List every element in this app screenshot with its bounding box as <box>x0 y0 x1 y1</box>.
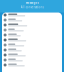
button[interactable] <box>2 12 62 17</box>
button[interactable] <box>2 62 62 67</box>
button[interactable] <box>2 52 62 57</box>
staticText: Messages <box>25 1 38 4</box>
button[interactable] <box>2 17 62 22</box>
button[interactable] <box>2 57 62 62</box>
button[interactable] <box>2 27 62 32</box>
button[interactable] <box>2 42 62 47</box>
button[interactable] <box>2 37 62 42</box>
button[interactable] <box>2 22 62 27</box>
button[interactable] <box>2 47 62 52</box>
button[interactable] <box>2 32 62 37</box>
staticText: All conversations <box>20 5 43 9</box>
